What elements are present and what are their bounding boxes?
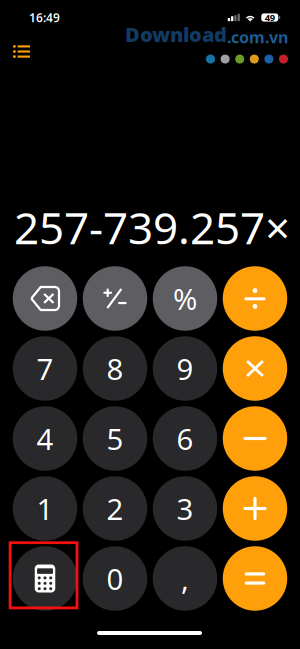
button[interactable]: 8 <box>83 336 147 401</box>
button[interactable]: Plus <box>223 476 287 541</box>
staticText: 8 <box>106 349 123 388</box>
staticText: 2 <box>106 489 123 528</box>
button[interactable]: 0 <box>83 546 147 611</box>
staticText: , <box>181 559 189 598</box>
button[interactable]: Delete <box>13 266 77 331</box>
button[interactable]: 4 <box>13 406 77 471</box>
staticText: 257-739.257× <box>14 198 290 256</box>
staticText: 1 <box>36 489 53 528</box>
button[interactable]: Menu <box>13 45 30 58</box>
button[interactable]: Equals <box>223 546 287 611</box>
button[interactable]: Divide <box>223 266 287 331</box>
button[interactable]: Plus minus <box>83 266 147 331</box>
staticText: 6 <box>176 419 193 458</box>
button[interactable]: 7 <box>13 336 77 401</box>
button[interactable]: Calculator <box>13 546 77 611</box>
staticText: 16:49 <box>29 9 60 25</box>
staticText: 4 <box>36 419 53 458</box>
button[interactable]: Minus <box>223 406 287 471</box>
staticText: 49 <box>265 11 275 24</box>
staticText: % <box>173 279 197 318</box>
staticText: 5 <box>106 419 123 458</box>
staticText: 3 <box>176 489 193 528</box>
staticText: Download <box>125 21 227 48</box>
button[interactable]: 3 <box>153 476 217 541</box>
staticText: 0 <box>106 559 123 598</box>
button[interactable]: 2 <box>83 476 147 541</box>
button[interactable]: Percent <box>153 266 217 331</box>
button[interactable]: Decimal <box>153 546 217 611</box>
staticText: .com.vn <box>227 26 288 47</box>
staticText: 7 <box>36 349 53 388</box>
button[interactable]: 6 <box>153 406 217 471</box>
button[interactable]: 9 <box>153 336 217 401</box>
button[interactable]: 1 <box>13 476 77 541</box>
staticText: 9 <box>176 349 193 388</box>
button[interactable]: Multiply <box>223 336 287 401</box>
button[interactable]: 5 <box>83 406 147 471</box>
